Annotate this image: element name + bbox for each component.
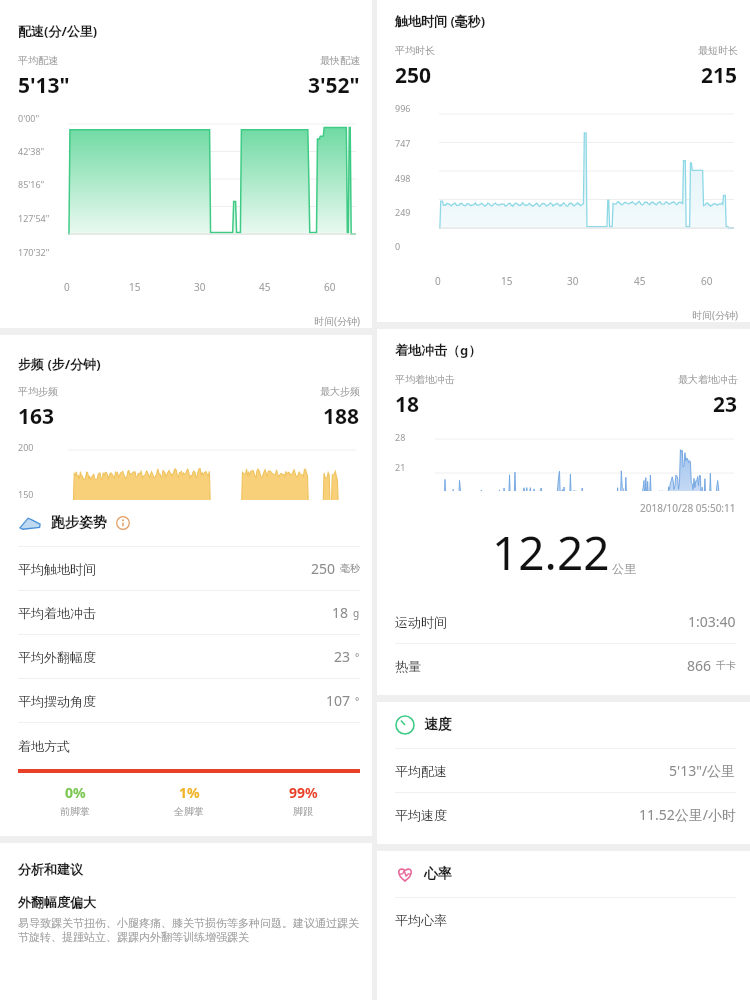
button[interactable]: 99% (246, 783, 360, 818)
staticText: 配速(分/公里) (18, 22, 98, 40)
button[interactable]: 运动时间 (395, 600, 736, 644)
staticText: 时间(分钟) (314, 314, 360, 328)
button[interactable]: 平均外翻幅度 (18, 635, 360, 679)
staticText: 平均着地冲击 (18, 605, 96, 621)
staticText: 平均速度 (395, 807, 447, 823)
staticText: 平均步频 (18, 385, 58, 398)
staticText: 2018/10/28 05:50:11 (640, 501, 736, 515)
staticText: 平均心率 (395, 912, 447, 928)
button[interactable]: 速度 (395, 702, 750, 748)
staticText: 42'38" (18, 145, 45, 157)
staticText: 千卡 (716, 659, 736, 672)
button[interactable]: 平均速度 (395, 793, 736, 836)
button[interactable]: 平均心率 (395, 898, 736, 941)
staticText: 747 (395, 137, 411, 149)
staticText: 时间(分钟) (692, 308, 738, 322)
staticText: ° (355, 694, 360, 708)
staticText: ° (355, 650, 360, 664)
staticText: 250 (311, 559, 336, 578)
staticText: 最大着地冲击 (678, 373, 738, 386)
staticText: 公里 (612, 561, 636, 576)
staticText: 60 (701, 274, 713, 288)
staticText: 1:03:40 (688, 612, 736, 631)
staticText: 188 (323, 402, 360, 431)
staticText: 触地时间 (毫秒) (395, 12, 486, 30)
staticText: 平均着地冲击 (395, 373, 455, 386)
staticText: 平均触地时间 (18, 561, 96, 577)
staticText: 0'00" (18, 112, 40, 124)
other: 跑步姿势 (18, 511, 42, 535)
staticText: 着地方式 (18, 738, 70, 754)
staticText: 99% (289, 783, 318, 802)
button[interactable]: 平均触地时间 (18, 547, 360, 591)
staticText: 5'13"/公里 (669, 761, 736, 780)
staticText: 107 (326, 691, 351, 710)
staticText: 平均摆动角度 (18, 693, 96, 709)
button[interactable]: 热量 (395, 644, 736, 687)
button[interactable]: 0% (18, 783, 132, 818)
staticText: 跑步姿势 (51, 514, 107, 532)
staticText: 最快配速 (320, 54, 360, 67)
staticText: 0 (395, 240, 401, 252)
staticText: 0 (64, 280, 70, 294)
staticText: 全脚掌 (174, 805, 204, 818)
staticText: 心率 (424, 865, 452, 883)
staticText: 996 (395, 102, 411, 114)
staticText: 21 (395, 461, 406, 473)
staticText: 18 (332, 603, 349, 622)
staticText: 30 (194, 280, 206, 294)
staticText: 215 (701, 61, 738, 90)
other: 信息 (116, 516, 130, 530)
staticText: 1% (179, 783, 200, 802)
staticText: 分析和建议 (18, 861, 83, 877)
button[interactable]: 平均着地冲击 (18, 591, 360, 635)
staticText: 15 (501, 274, 513, 288)
staticText: 18 (395, 390, 420, 419)
staticText: 脚跟 (293, 805, 313, 818)
staticText: 着地冲击（g） (395, 341, 482, 359)
staticText: 11.52公里/小时 (639, 805, 736, 824)
staticText: 28 (395, 431, 406, 443)
button[interactable]: 1% (132, 783, 246, 818)
staticText: 15 (129, 280, 141, 294)
other: 心率 (395, 864, 415, 884)
staticText: 866 (687, 656, 712, 675)
button[interactable]: 平均摆动角度 (18, 679, 360, 723)
button[interactable]: 平均配速 (395, 749, 736, 793)
staticText: 最短时长 (698, 44, 738, 57)
staticText: 170'32" (18, 246, 50, 258)
staticText: 85'16" (18, 178, 45, 190)
staticText: 60 (324, 280, 336, 294)
staticText: 23 (713, 390, 738, 419)
staticText: 30 (567, 274, 579, 288)
staticText: 外翻幅度偏大 (18, 894, 96, 910)
other: 速度 (395, 715, 415, 735)
staticText: 热量 (395, 658, 421, 674)
staticText: 45 (259, 280, 271, 294)
staticText: 平均时长 (395, 44, 435, 57)
staticText: 步频 (步/分钟) (18, 355, 101, 373)
staticText: 12.22 (492, 521, 610, 584)
staticText: 498 (395, 172, 411, 184)
button[interactable]: 跑步姿势 (18, 500, 360, 546)
staticText: 163 (18, 402, 55, 431)
staticText: 毫秒 (340, 562, 360, 575)
staticText: 前脚掌 (60, 805, 90, 818)
staticText: 150 (18, 488, 34, 500)
staticText: 最大步频 (320, 385, 360, 398)
staticText: 5'13" (18, 71, 70, 100)
staticText: 250 (395, 61, 432, 90)
staticText: 200 (18, 441, 34, 453)
staticText: 平均配速 (395, 763, 447, 779)
staticText: 速度 (424, 716, 452, 734)
staticText: 平均外翻幅度 (18, 649, 96, 665)
staticText: 平均配速 (18, 54, 58, 67)
staticText: 249 (395, 206, 411, 218)
staticText: 3'52" (308, 71, 360, 100)
staticText: 0% (65, 783, 86, 802)
staticText: g (353, 606, 360, 620)
button[interactable]: 心率 (395, 851, 750, 897)
staticText: 0 (435, 274, 441, 288)
staticText: 45 (634, 274, 646, 288)
staticText: 易导致踝关节扭伤、小腿疼痛、膝关节损伤等多种问题。建议通过踝关节旋转、提踵站立、… (18, 916, 360, 944)
